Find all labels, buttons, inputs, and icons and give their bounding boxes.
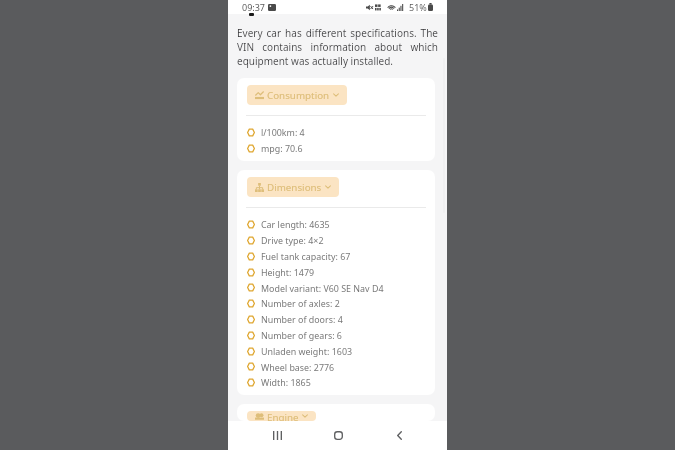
staticText: Number of gears: 6 bbox=[261, 329, 342, 341]
staticText: Engine bbox=[267, 411, 299, 421]
staticText: mpg: 70.6 bbox=[261, 142, 303, 154]
staticText: Width: 1865 bbox=[261, 376, 311, 388]
button[interactable]: Home bbox=[323, 421, 353, 450]
staticText: Car length: 4635 bbox=[261, 218, 330, 230]
staticText: Number of doors: 4 bbox=[261, 313, 343, 325]
staticText: Every car has different specifications. … bbox=[237, 26, 438, 68]
staticText: Wheel base: 2776 bbox=[261, 361, 335, 373]
staticText: Fuel tank capacity: 67 bbox=[261, 250, 351, 262]
button[interactable]: Consumption bbox=[247, 85, 347, 105]
button[interactable]: Engine bbox=[247, 411, 316, 421]
staticText: Height: 1479 bbox=[261, 266, 315, 278]
staticText: Number of axles: 2 bbox=[261, 297, 340, 309]
button[interactable]: Recent apps bbox=[262, 421, 292, 450]
button[interactable]: Dimensions bbox=[247, 177, 339, 197]
staticText: 51% bbox=[409, 1, 427, 13]
staticText: Consumption bbox=[267, 89, 330, 102]
staticText: l/100km: 4 bbox=[261, 126, 305, 138]
staticText: 09:37 bbox=[242, 1, 266, 13]
staticText: Unladen weight: 1603 bbox=[261, 345, 353, 357]
staticText: Model variant: V60 SE Nav D4 bbox=[261, 282, 384, 294]
staticText: Drive type: 4×2 bbox=[261, 234, 324, 246]
button[interactable]: Back bbox=[384, 421, 414, 450]
staticText: Dimensions bbox=[267, 181, 322, 194]
